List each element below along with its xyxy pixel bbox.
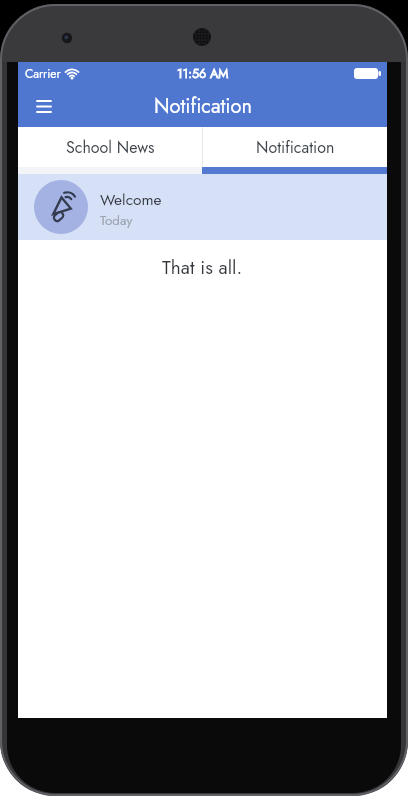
button[interactable] bbox=[29, 92, 59, 120]
staticText: School News bbox=[66, 136, 155, 159]
staticText: Welcome bbox=[100, 188, 162, 210]
staticText: Today bbox=[100, 211, 133, 231]
staticText: Notification bbox=[256, 136, 335, 159]
button[interactable]: Welcome bbox=[18, 174, 387, 240]
staticText: 11:56 AM bbox=[177, 65, 229, 83]
staticText: That is all. bbox=[162, 254, 243, 281]
staticText: Notification bbox=[154, 92, 252, 121]
staticText: Carrier bbox=[25, 65, 61, 82]
button[interactable]: School News bbox=[18, 127, 202, 167]
button[interactable]: Notification bbox=[203, 127, 387, 167]
